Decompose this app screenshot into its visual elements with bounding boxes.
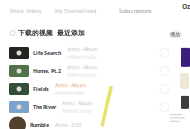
staticText: My Channel Feed	[55, 7, 96, 15]
button[interactable]: The River	[0, 98, 170, 116]
staticText: The River	[33, 103, 56, 111]
staticText: Artist · Album	[55, 82, 86, 89]
staticText: 播放	[170, 31, 180, 38]
staticText: Added today	[55, 89, 85, 96]
staticText: Added today	[62, 107, 92, 114]
staticText: Artist · Album	[67, 64, 98, 71]
staticText: Home, Pt. 2	[33, 67, 61, 75]
button[interactable]: Subscriptions	[119, 7, 152, 15]
button[interactable]: Life Search	[0, 44, 170, 62]
staticText: Rumble	[30, 121, 49, 129]
button[interactable]: Home, Pt. 2	[0, 62, 170, 80]
staticText: Fields	[33, 85, 49, 93]
button[interactable]: Music Videos	[10, 7, 42, 15]
staticText: Artist · 2:33	[55, 121, 81, 129]
staticText: Life Search	[33, 49, 61, 57]
staticText: Music Videos	[10, 7, 42, 15]
staticText: Artist · Album	[62, 100, 93, 107]
button[interactable]: 播放	[170, 30, 182, 39]
button[interactable]: Rumble	[0, 116, 170, 129]
staticText: Artist · Album	[67, 46, 98, 53]
staticText: 下载的视频 最近添加	[18, 29, 85, 37]
staticText: Oz	[182, 2, 190, 11]
staticText: Added today	[67, 53, 97, 60]
staticText: Added today	[67, 71, 97, 78]
staticText: Subscriptions	[119, 7, 152, 15]
button[interactable]: My Channel Feed	[55, 7, 96, 15]
button[interactable]: Fields	[0, 80, 170, 98]
